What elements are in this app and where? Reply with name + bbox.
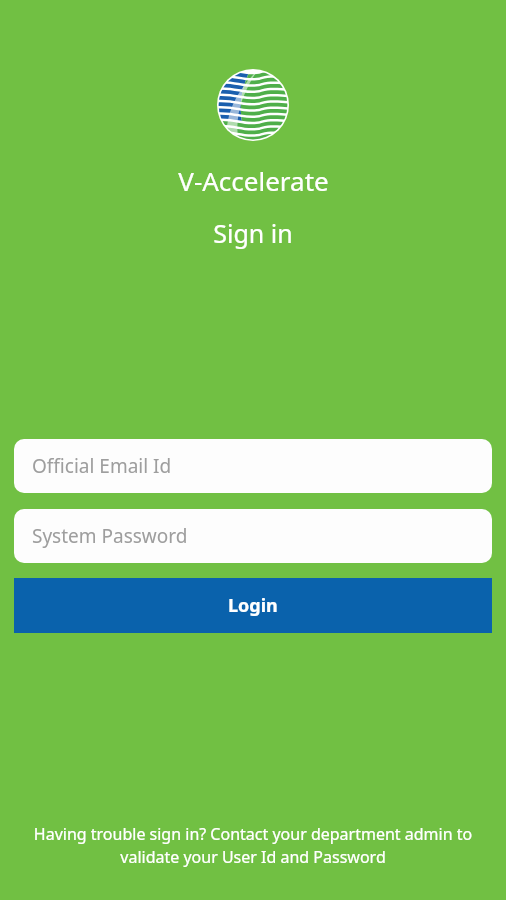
staticText: Sign in xyxy=(213,216,293,250)
button[interactable]: Official Email Id xyxy=(14,439,492,493)
button[interactable]: System Password xyxy=(14,509,492,563)
staticText: V-Accelerate xyxy=(178,163,329,198)
staticText: Login xyxy=(228,593,278,618)
staticText: System Password xyxy=(32,523,188,549)
staticText: Having trouble sign in? Contact your dep… xyxy=(30,823,476,868)
staticText: Official Email Id xyxy=(32,453,172,479)
other: V-Accelerate logo xyxy=(217,69,289,141)
button[interactable]: Login xyxy=(14,578,492,633)
